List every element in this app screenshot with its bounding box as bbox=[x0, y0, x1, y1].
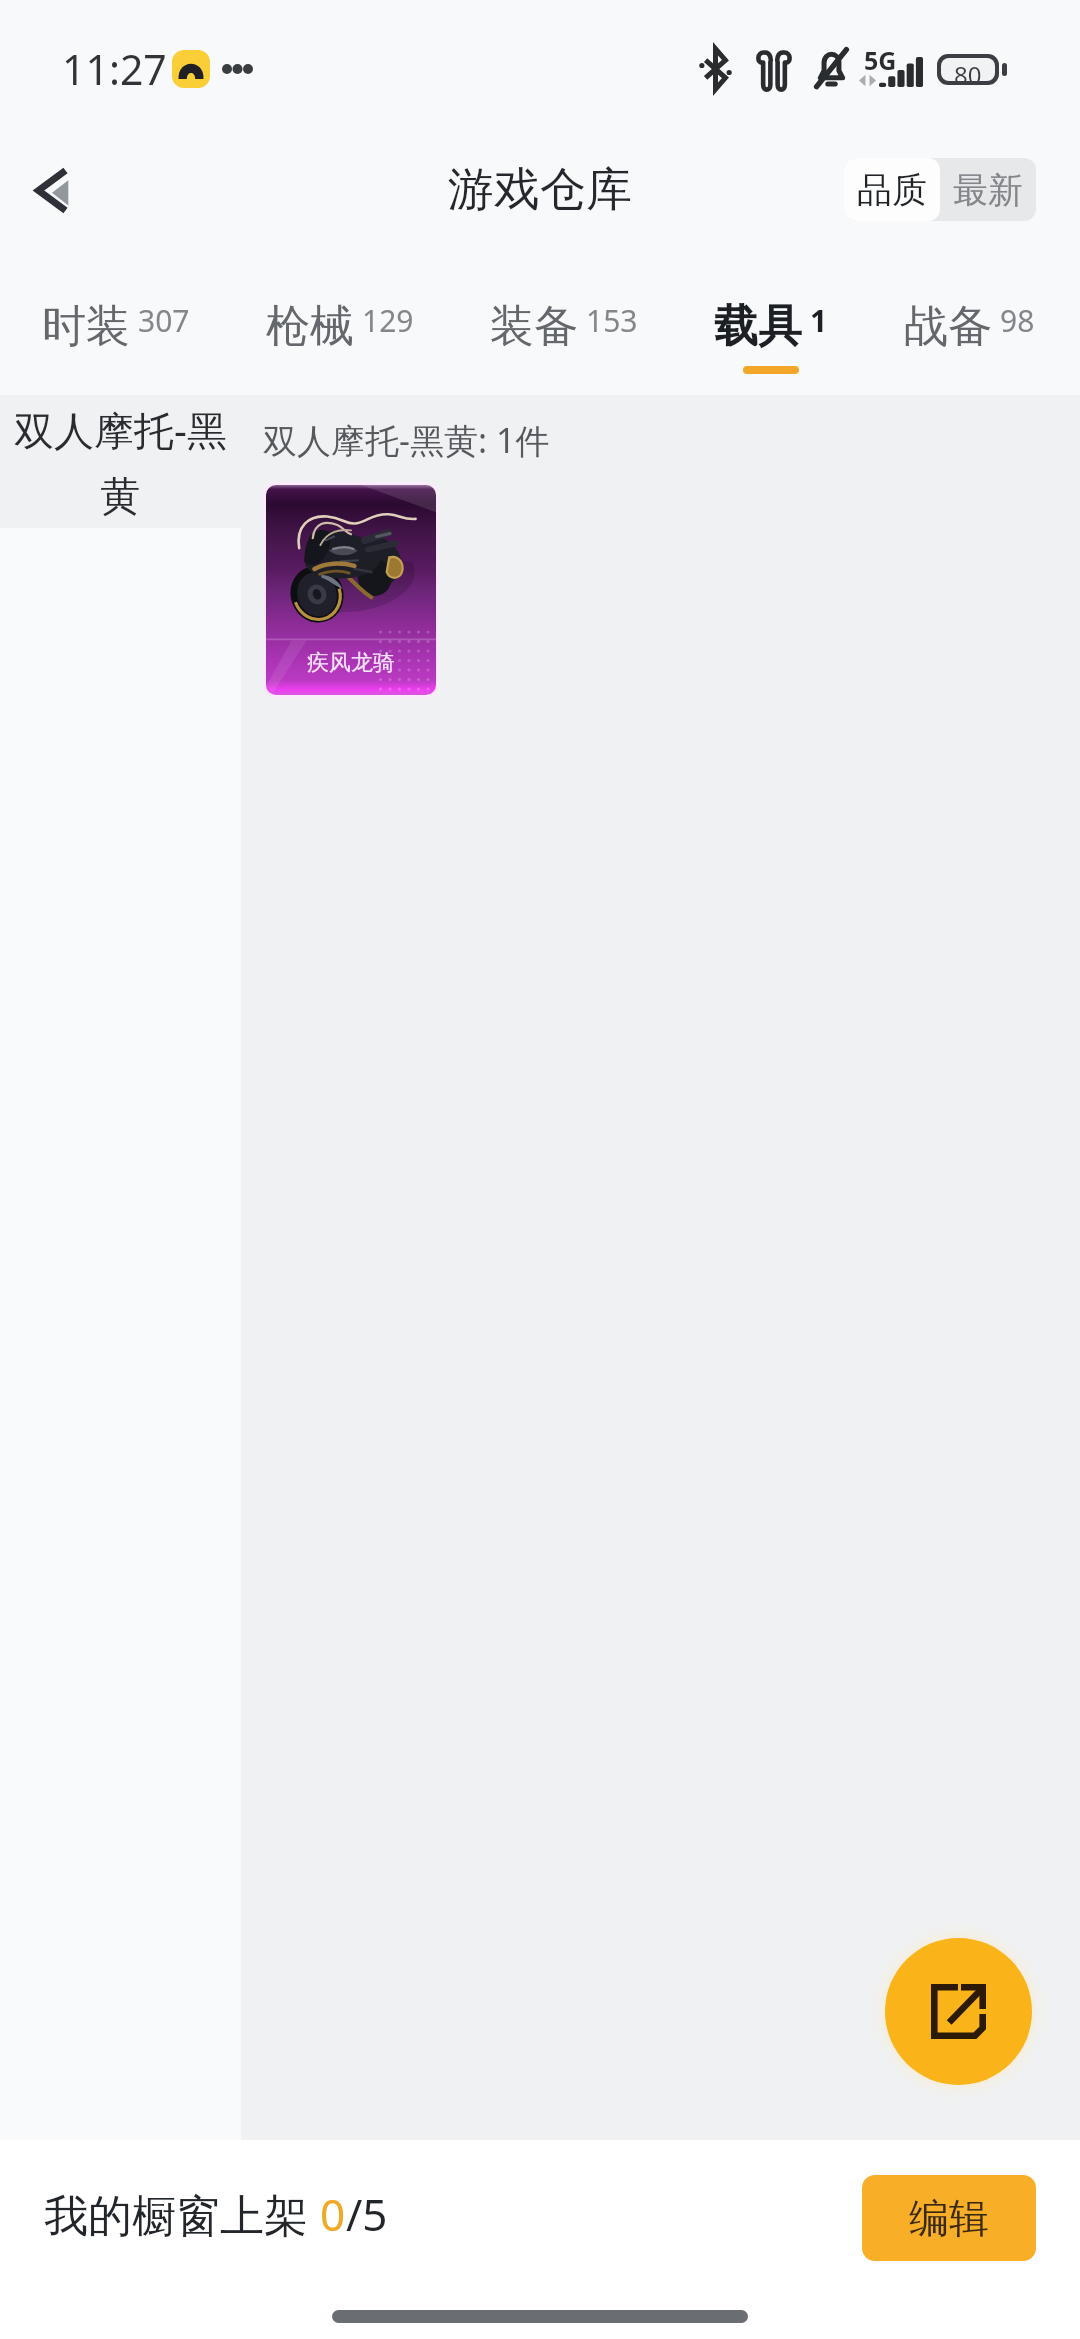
button[interactable]: 最新 bbox=[940, 158, 1036, 221]
staticText: 装备 bbox=[490, 299, 578, 354]
staticText: 307 bbox=[138, 300, 190, 341]
staticText: 129 bbox=[362, 300, 414, 341]
staticText: 153 bbox=[586, 300, 638, 341]
staticText: 我的橱窗上架 bbox=[44, 2184, 320, 2244]
staticText: 98 bbox=[1000, 300, 1035, 341]
staticText: 双人摩托-黑 黄 bbox=[14, 402, 227, 522]
button[interactable]: 战备 bbox=[904, 262, 1035, 395]
button[interactable]: Open external link bbox=[885, 1938, 1032, 2085]
button[interactable]: 品质 bbox=[844, 158, 940, 221]
button[interactable]: 编辑 bbox=[862, 2175, 1036, 2261]
button[interactable]: Back bbox=[6, 144, 98, 236]
button[interactable]: 疾风龙骑 bbox=[266, 485, 436, 695]
staticText: 战备 bbox=[904, 299, 992, 354]
staticText: 1 bbox=[810, 300, 828, 341]
button[interactable]: 枪械 bbox=[266, 262, 414, 395]
staticText: 11:27 bbox=[62, 41, 167, 97]
staticText: /5 bbox=[346, 2184, 388, 2244]
staticText: 0 bbox=[320, 2184, 346, 2244]
staticText: 80 bbox=[954, 58, 982, 81]
staticText: 游戏仓库 bbox=[448, 161, 632, 219]
staticText: 品质 bbox=[857, 168, 927, 212]
staticText: 最新 bbox=[953, 168, 1023, 212]
staticText: 双人摩托-黑黄: 1件 bbox=[263, 417, 550, 463]
staticText: 时装 bbox=[42, 299, 130, 354]
button[interactable]: 时装 bbox=[42, 262, 190, 395]
button[interactable]: 装备 bbox=[490, 262, 638, 395]
staticText: 编辑 bbox=[909, 2193, 989, 2243]
staticText: 5G bbox=[864, 43, 897, 77]
button[interactable]: 双人摩托-黑 黄 bbox=[0, 395, 241, 528]
staticText: 枪械 bbox=[266, 299, 354, 354]
button[interactable]: 载具 bbox=[714, 262, 828, 395]
staticText: 载具 bbox=[714, 299, 802, 354]
staticText: 疾风龙骑 bbox=[307, 649, 395, 677]
